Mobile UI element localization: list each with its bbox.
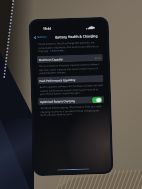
staticText: they age. [38,49,50,52]
staticText: usage between charges. [39,70,66,74]
staticText: To reduce battery ageing, iPhone learns … [40,104,102,109]
staticText: Battery [37,35,47,39]
staticText: This is a measure of battery capacity re… [39,62,100,67]
button[interactable]: Optimised Battery Charging [38,96,104,105]
staticText: 80 % until you need to use it. [40,112,73,116]
button[interactable]: Peak Performance Capability [37,75,104,84]
staticText: charging routine so it can wait to finis… [40,108,99,113]
staticText: counter performance impacts that may be … [40,87,99,92]
staticText: consumable components that become less e… [38,44,99,49]
staticText: Peak Performance Capability [39,78,75,83]
staticText: Learn more... [50,48,66,52]
staticText: Optimised Battery Charging [40,99,75,104]
staticText: 96 % [95,56,101,60]
button[interactable]: Battery [31,35,50,39]
staticText: Phone batteries, like all rechargeable b… [38,40,94,45]
staticText: Maximum Capacity [39,57,63,62]
staticText: was new. Lower capacity may result in fe… [39,66,98,71]
button[interactable]: Maximum Capacity [37,54,103,63]
staticText: Built-in dynamic software and hardware s… [40,83,104,88]
staticText: Battery Health & Charging [55,33,98,38]
staticText: your iPhone battery chemically ages. [40,91,81,95]
staticText: 19:44 [43,27,52,31]
